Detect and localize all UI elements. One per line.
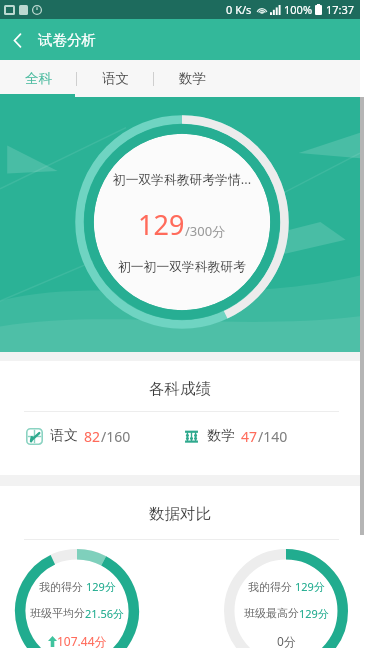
staticText: 129分 xyxy=(295,579,325,594)
button[interactable]: 数学 xyxy=(154,60,230,97)
staticText: 我的得分 xyxy=(39,579,86,594)
button[interactable]: 语文 xyxy=(20,423,170,449)
staticText: /300分 xyxy=(185,222,226,240)
staticText: 107.44分 xyxy=(57,633,107,648)
staticText: 100% xyxy=(284,2,313,17)
staticText: 0分 xyxy=(277,633,296,648)
button[interactable]: Back xyxy=(0,23,34,57)
staticText: 17:37 xyxy=(326,2,355,17)
staticText: /160 xyxy=(101,427,131,446)
button[interactable]: 数学 xyxy=(177,423,327,449)
staticText: 班级最高分 xyxy=(244,606,299,620)
staticText: 我的得分 xyxy=(248,579,295,594)
staticText: 班级平均分 xyxy=(30,606,85,620)
button[interactable]: 全科 xyxy=(0,60,76,97)
staticText: 47 xyxy=(241,427,258,446)
button[interactable]: 语文 xyxy=(77,60,153,97)
staticText: 各科成绩 xyxy=(0,379,360,399)
staticText: 语文 xyxy=(50,427,78,445)
staticText: 82 xyxy=(84,427,101,446)
staticText: 数据对比 xyxy=(0,504,360,524)
staticText: 0 K/s xyxy=(226,2,252,17)
staticText: 初一初一双学科教研考 xyxy=(92,259,272,275)
staticText: 初一双学科教研考学情... xyxy=(92,170,272,187)
staticText: 21.56分 xyxy=(85,606,125,621)
staticText: 试卷分析 xyxy=(38,31,96,49)
staticText: 129 xyxy=(138,206,185,243)
staticText: 数学 xyxy=(179,70,206,87)
staticText: /140 xyxy=(258,427,288,446)
staticText: 129分 xyxy=(86,579,116,594)
staticText: 数学 xyxy=(207,427,235,445)
staticText: 129分 xyxy=(299,606,329,621)
staticText: 全科 xyxy=(25,70,52,87)
staticText: 语文 xyxy=(102,70,129,87)
